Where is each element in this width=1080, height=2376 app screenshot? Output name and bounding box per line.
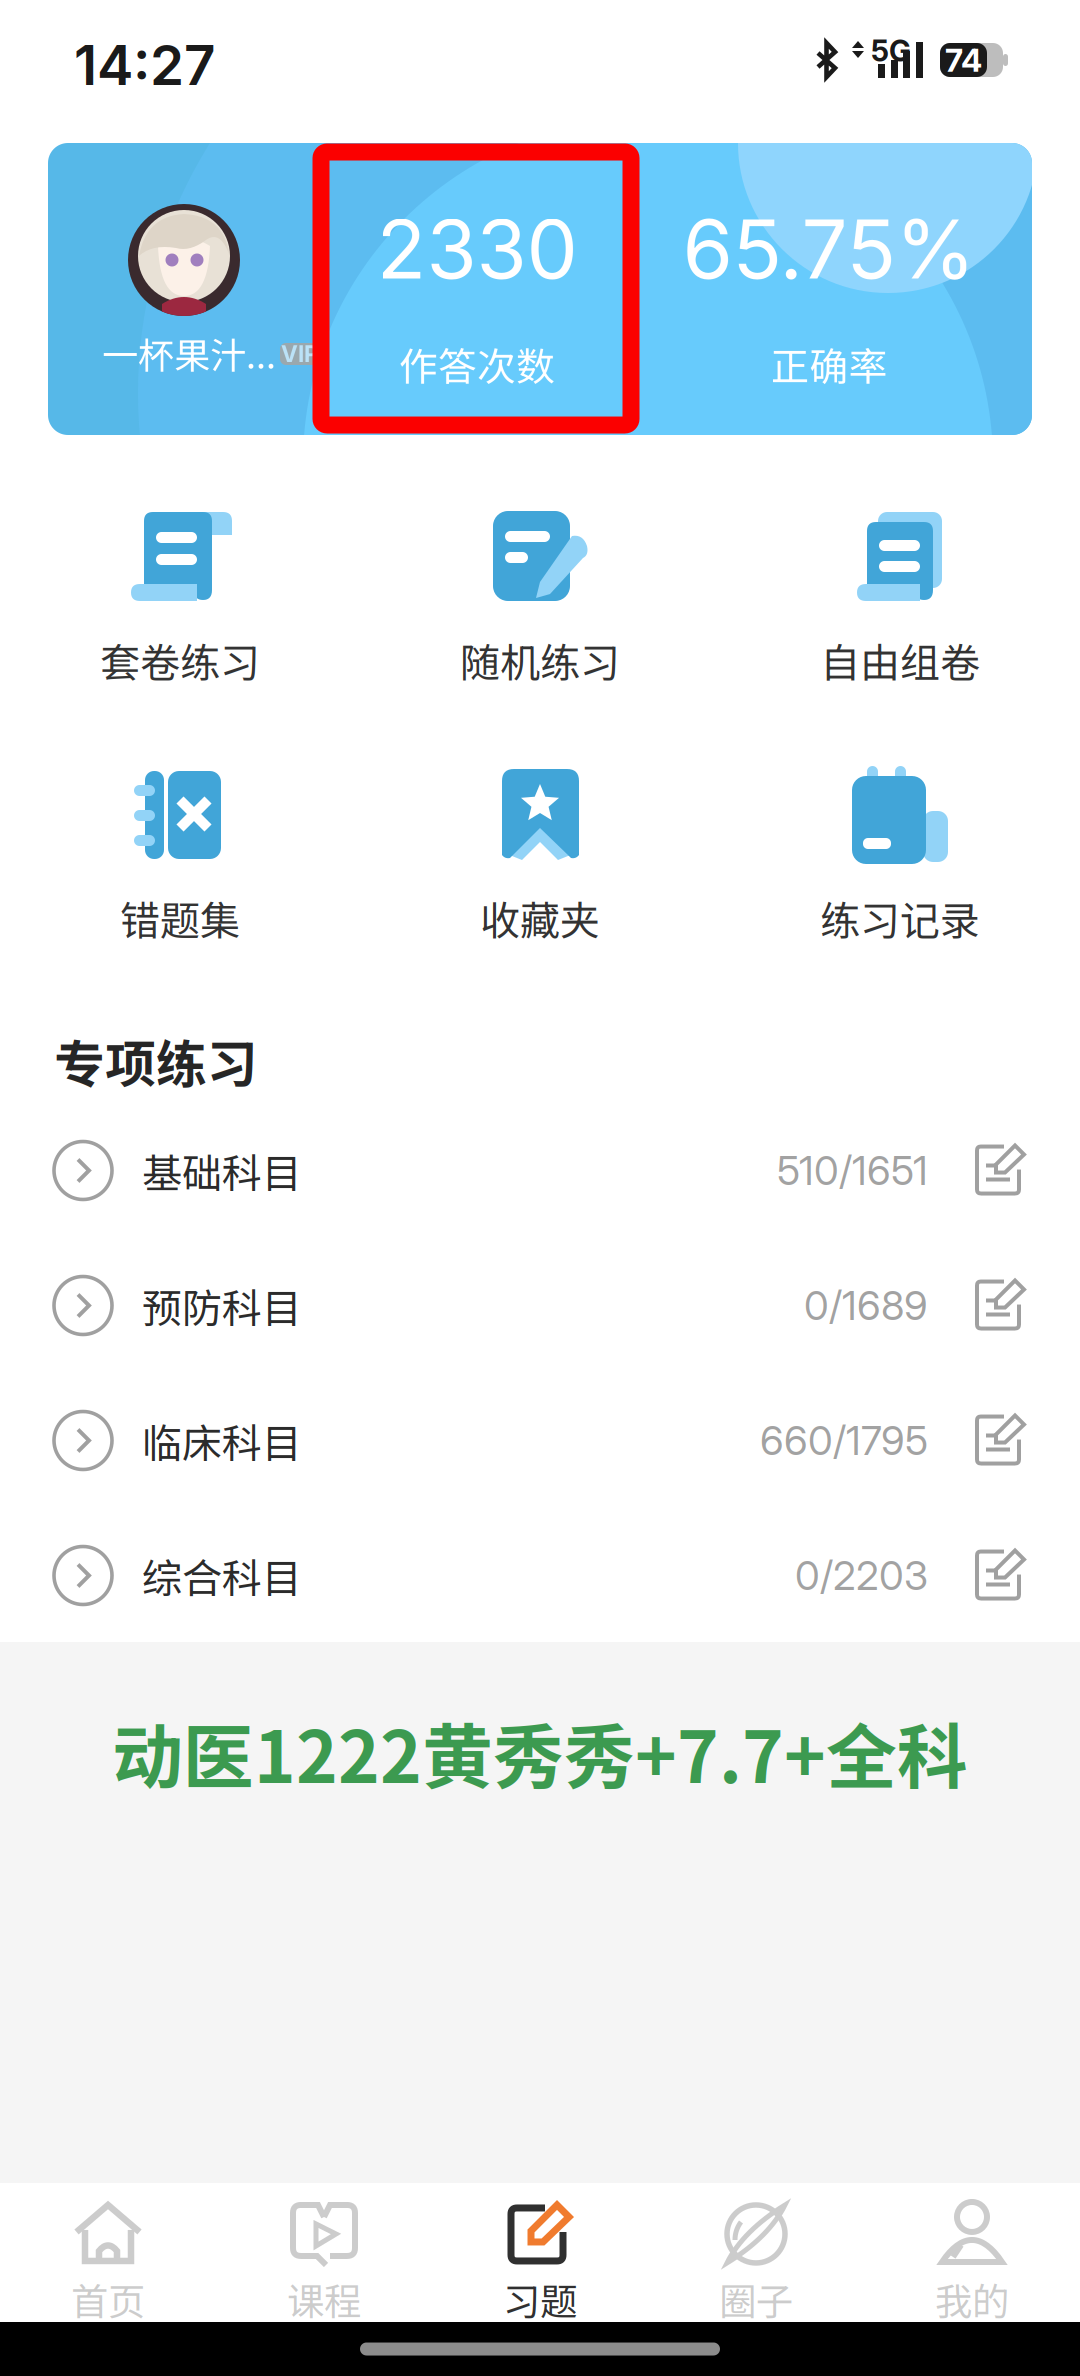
- staticText: 圈子: [719, 2272, 793, 2326]
- staticText: VIP: [281, 340, 319, 368]
- button[interactable]: 错题集: [0, 768, 360, 947]
- staticText: 作答次数: [399, 336, 555, 392]
- staticText: 动医1222黄秀秀+7.7+全科: [112, 1701, 968, 1803]
- staticText: 正确率: [770, 336, 887, 392]
- button[interactable]: 练习记录: [720, 768, 1080, 947]
- staticText: 练习记录: [820, 889, 980, 947]
- staticText: 一杯果汁...: [102, 327, 276, 379]
- staticText: 专项练习: [54, 1024, 258, 1097]
- staticText: 预防科目: [142, 1276, 302, 1334]
- staticText: 74: [945, 41, 982, 79]
- button[interactable]: 套卷练习: [0, 510, 360, 689]
- button[interactable]: 预防科目: [0, 1238, 1080, 1373]
- staticText: 我的: [935, 2272, 1009, 2326]
- staticText: 首页: [71, 2272, 145, 2326]
- staticText: 基础科目: [142, 1141, 302, 1199]
- staticText: 自由组卷: [820, 631, 980, 689]
- staticText: 0/1689: [804, 1281, 928, 1330]
- button[interactable]: 我的: [864, 2183, 1080, 2322]
- button[interactable]: 习题: [432, 2183, 648, 2322]
- staticText: 套卷练习: [100, 631, 260, 689]
- button[interactable]: 收藏夹: [360, 768, 720, 947]
- button[interactable]: 课程: [216, 2183, 432, 2322]
- staticText: 综合科目: [142, 1546, 302, 1604]
- staticText: 临床科目: [142, 1411, 302, 1469]
- staticText: 0/2203: [795, 1551, 928, 1600]
- staticText: 错题集: [120, 889, 240, 947]
- staticText: 14:27: [74, 32, 215, 98]
- staticText: 2330: [376, 200, 577, 298]
- staticText: 收藏夹: [480, 889, 600, 947]
- button[interactable]: 首页: [0, 2183, 216, 2322]
- button[interactable]: 基础科目: [0, 1103, 1080, 1238]
- staticText: 习题: [503, 2272, 577, 2326]
- button[interactable]: 自由组卷: [720, 510, 1080, 689]
- button[interactable]: 随机练习: [360, 510, 720, 689]
- button[interactable]: 圈子: [648, 2183, 864, 2322]
- staticText: 5G: [871, 33, 911, 68]
- staticText: 660/1795: [760, 1416, 928, 1465]
- button[interactable]: 综合科目: [0, 1508, 1080, 1643]
- staticText: 65.75%: [682, 200, 975, 298]
- button[interactable]: 临床科目: [0, 1373, 1080, 1508]
- staticText: 随机练习: [460, 631, 620, 689]
- staticText: 510/1651: [777, 1146, 928, 1195]
- staticText: 课程: [287, 2272, 361, 2326]
